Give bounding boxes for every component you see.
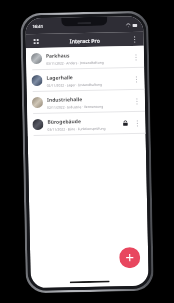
button[interactable]: More options [131,70,141,88]
button[interactable]: Bürogebäude [27,112,146,135]
staticText: Bürogebäude [47,118,81,126]
staticText: Parkhaus [46,52,70,60]
staticText: 16:41 [32,24,43,30]
button[interactable]: Parkhaus [26,46,144,69]
button[interactable]: More options [131,48,140,66]
button[interactable]: More options [132,114,142,132]
staticText: Industriehalle [47,96,83,104]
button[interactable]: Locked [120,118,129,127]
staticText: Lagerhalle [46,74,73,82]
button[interactable]: More options [132,92,141,110]
button[interactable]: Menu [31,36,41,46]
staticText: Interact Pro [70,37,101,44]
staticText: 02/11/2022 · Lager · Instandhaltung [46,82,103,87]
button[interactable]: More options [129,34,140,44]
button[interactable]: Lagerhalle [26,68,145,91]
staticText: 02/11/2022 · Industrie · Vermessung [47,104,104,109]
staticText: 03/11/2022 · Büro · Funktionsprüfung [47,126,107,131]
button[interactable]: Add [119,247,140,268]
staticText: 03/11/2022 · Anders · Instandhaltung [46,60,104,65]
button[interactable]: Industriehalle [27,90,145,113]
